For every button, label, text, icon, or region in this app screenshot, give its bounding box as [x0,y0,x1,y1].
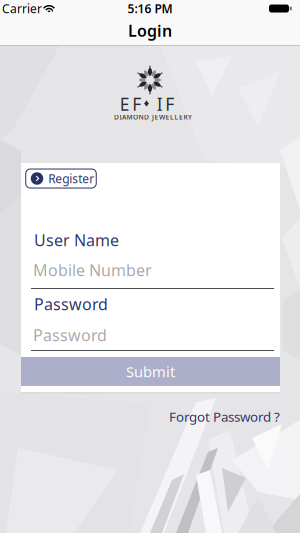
staticText: IF [157,92,174,115]
button[interactable]: Register [26,169,96,188]
button[interactable]: Mobile Number [31,258,274,289]
staticText: Password [33,324,107,346]
button[interactable]: Forgot Password ? [169,408,280,425]
staticText: Submit [126,362,175,381]
staticText: DIAMOND JEWELLERY [114,113,192,121]
button[interactable]: Submit [21,357,280,386]
staticText: Carrier [2,0,42,16]
staticText: Mobile Number [33,259,152,281]
staticText: Register [48,170,94,186]
button[interactable]: Password [31,320,274,351]
staticText: EF [120,92,141,115]
staticText: 5:16 PM [127,0,172,16]
staticText: User Name [34,229,119,251]
staticText: Password [34,293,108,315]
staticText: Login [128,20,172,41]
staticText: Forgot Password ? [169,408,280,425]
